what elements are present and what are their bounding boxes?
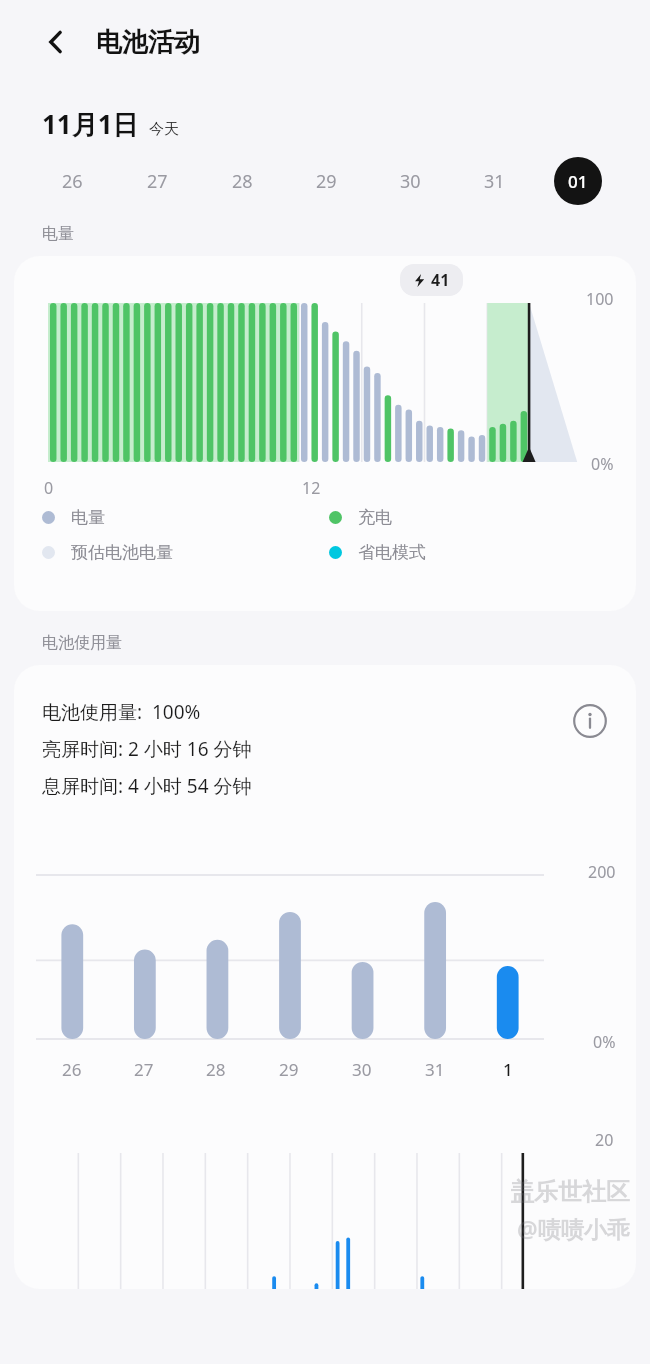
staticText: 30: [400, 169, 421, 194]
staticText: 28: [206, 1058, 226, 1081]
staticText: @啧啧小乖: [517, 1213, 630, 1244]
staticText: 31: [484, 169, 505, 194]
button[interactable]: Info: [570, 701, 610, 741]
button[interactable]: 29: [284, 151, 368, 211]
button[interactable]: 28: [200, 151, 284, 211]
staticText: 27: [147, 169, 168, 194]
staticText: 28: [232, 169, 253, 194]
staticText: 预估电池电量: [71, 542, 173, 563]
staticText: 26: [62, 169, 83, 194]
staticText: 12: [302, 477, 321, 499]
staticText: 20: [595, 1129, 614, 1151]
staticText: 31: [425, 1058, 445, 1081]
staticText: 11月1日: [42, 106, 139, 142]
button[interactable]: 01: [536, 151, 620, 211]
button[interactable]: 27: [115, 151, 200, 211]
staticText: 充电: [358, 507, 392, 528]
staticText: 电量: [71, 507, 105, 528]
staticText: 0: [44, 477, 54, 499]
staticText: 27: [134, 1058, 154, 1081]
staticText: 29: [316, 169, 337, 194]
staticText: 0%: [591, 453, 614, 475]
staticText: 29: [279, 1058, 299, 1081]
button[interactable]: 31: [452, 151, 536, 211]
staticText: 26: [62, 1058, 82, 1081]
staticText: 1: [503, 1058, 513, 1081]
staticText: 息屏时间: 4 小时 54 分钟: [42, 773, 252, 799]
button[interactable]: Back: [34, 20, 78, 64]
staticText: 41: [431, 269, 450, 291]
staticText: 30: [352, 1058, 372, 1081]
staticText: 100: [586, 288, 614, 310]
staticText: 电池活动: [96, 26, 200, 59]
staticText: 电池使用量: 100%: [42, 699, 201, 725]
staticText: 盖乐世社区: [510, 1177, 630, 1207]
button[interactable]: 26: [30, 151, 115, 211]
staticText: 01: [568, 170, 588, 193]
button[interactable]: 30: [368, 151, 452, 211]
staticText: 电池使用量: [42, 633, 122, 653]
staticText: 今天: [149, 120, 179, 139]
staticText: 0%: [593, 1031, 616, 1053]
staticText: 亮屏时间: 2 小时 16 分钟: [42, 736, 252, 762]
staticText: 电量: [42, 224, 74, 244]
staticText: 省电模式: [358, 542, 426, 563]
staticText: 200: [588, 861, 616, 883]
